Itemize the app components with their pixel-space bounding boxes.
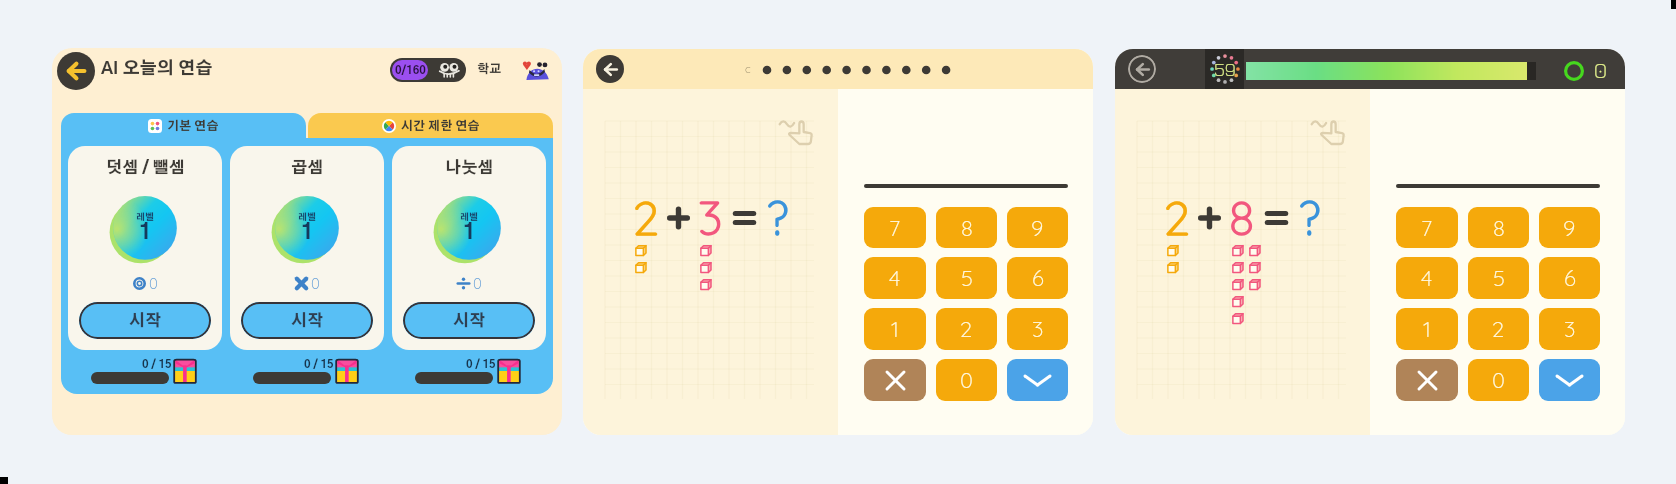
staticText: 레벨 <box>136 213 155 222</box>
button[interactable]: 2 <box>1468 308 1529 350</box>
staticText: 1 <box>301 222 314 243</box>
staticText: 9 <box>1563 214 1576 242</box>
staticText: 레벨 <box>298 213 317 222</box>
staticText: AI 오늘의 연습 <box>101 60 213 77</box>
staticText: 2 <box>1492 315 1505 343</box>
button[interactable]: 시작 <box>403 302 535 339</box>
button[interactable]: 0 <box>1468 359 1529 401</box>
staticText: 8 <box>1229 188 1255 247</box>
button[interactable]: 4 <box>864 257 926 299</box>
staticText: 시작 <box>291 313 324 329</box>
staticText: 0 / 15 <box>304 359 334 370</box>
staticText: 2 <box>633 188 659 247</box>
staticText: 1 <box>463 222 476 243</box>
staticText: 6 <box>1564 264 1576 292</box>
button[interactable]: 8 <box>1468 207 1529 248</box>
staticText: 8 <box>1493 214 1505 242</box>
button[interactable]: 3 <box>1539 308 1600 350</box>
staticText: 9 <box>1031 214 1044 242</box>
staticText: 3 <box>1564 315 1576 343</box>
staticText: 기본 연습 <box>167 120 219 132</box>
staticText: 0/160 <box>395 65 426 76</box>
button[interactable]: 1 <box>1396 308 1458 350</box>
staticText: 6 <box>1032 264 1044 292</box>
staticText: 학교 <box>477 63 502 75</box>
button[interactable]: Clear <box>864 359 926 401</box>
staticText: 덧셈 / 뺄셈 <box>106 160 185 176</box>
staticText: ? <box>766 188 789 247</box>
button[interactable]: 7 <box>864 207 926 248</box>
staticText: 3 <box>1032 315 1044 343</box>
staticText: 시간 제한 연습 <box>401 120 480 132</box>
staticText: 3 <box>698 188 723 247</box>
staticText: 1 <box>139 222 152 243</box>
button[interactable]: 1 <box>864 308 926 350</box>
staticText: 0 / 15 <box>142 359 172 370</box>
staticText: 레벨 <box>460 213 479 222</box>
button[interactable]: 시작 <box>241 302 373 339</box>
button[interactable]: Clear <box>1396 359 1458 401</box>
button[interactable]: 덧셈 / 뺄셈 <box>68 146 222 350</box>
staticText: 4 <box>1421 264 1433 292</box>
staticText: 0 <box>149 274 158 293</box>
button[interactable]: 5 <box>936 257 997 299</box>
staticText: 4 <box>889 264 901 292</box>
button[interactable]: Submit <box>1539 359 1600 401</box>
button[interactable]: Submit <box>1007 359 1068 401</box>
button[interactable]: Back <box>596 55 624 83</box>
button[interactable]: 곱셈 <box>230 146 384 350</box>
staticText: 7 <box>1421 214 1433 242</box>
button[interactable]: Back <box>1128 55 1156 83</box>
staticText: 1 <box>1423 315 1431 343</box>
staticText: 0 <box>1492 366 1505 394</box>
button[interactable]: 5 <box>1468 257 1529 299</box>
staticText: 0 <box>311 274 320 293</box>
button[interactable]: 7 <box>1396 207 1458 248</box>
button[interactable]: 0 <box>936 359 997 401</box>
button[interactable]: 9 <box>1007 207 1068 248</box>
staticText: 곱셈 <box>291 160 324 176</box>
staticText: 1 <box>891 315 899 343</box>
button[interactable]: 시간 제한 연습 <box>308 113 553 139</box>
staticText: 시작 <box>129 313 162 329</box>
button[interactable]: Back <box>57 52 95 90</box>
staticText: 2 <box>1164 188 1190 247</box>
button[interactable]: 9 <box>1539 207 1600 248</box>
staticText: ? <box>1298 188 1321 247</box>
button[interactable]: 3 <box>1007 308 1068 350</box>
staticText: 시작 <box>453 313 486 329</box>
staticText: 0 <box>473 274 482 293</box>
staticText: 0 <box>1594 57 1607 83</box>
staticText: 8 <box>961 214 973 242</box>
button[interactable]: 0/160 <box>390 58 466 82</box>
button[interactable]: 시작 <box>79 302 211 339</box>
button[interactable]: 6 <box>1539 257 1600 299</box>
staticText: c <box>745 62 751 76</box>
staticText: 0 <box>960 366 973 394</box>
button[interactable]: 기본 연습 <box>61 113 306 139</box>
button[interactable]: Avatar <box>520 55 552 87</box>
staticText: 5 <box>961 264 973 292</box>
staticText: 59 <box>1214 58 1236 80</box>
staticText: 7 <box>889 214 901 242</box>
button[interactable]: 6 <box>1007 257 1068 299</box>
button[interactable]: 나눗셈 <box>392 146 546 350</box>
staticText: 5 <box>1493 264 1505 292</box>
button[interactable]: 8 <box>936 207 997 248</box>
staticText: 0 / 15 <box>466 359 496 370</box>
staticText: 2 <box>960 315 973 343</box>
button[interactable]: 4 <box>1396 257 1458 299</box>
button[interactable]: 2 <box>936 308 997 350</box>
staticText: 나눗셈 <box>445 160 494 176</box>
